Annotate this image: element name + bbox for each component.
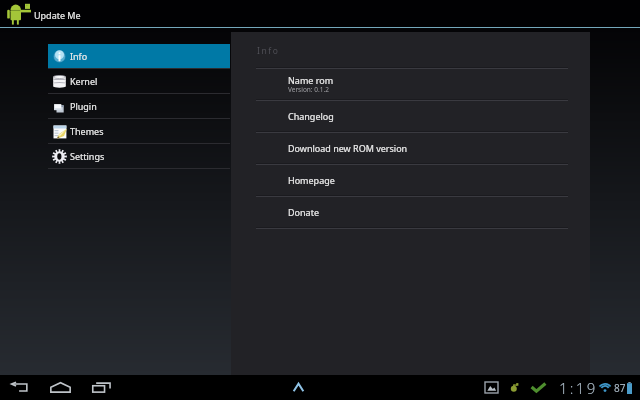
button[interactable]: Recent apps xyxy=(88,375,114,400)
staticText: 1:19 xyxy=(559,378,598,398)
button[interactable]: Donate xyxy=(231,197,590,227)
staticText: Version: 0.1.2 xyxy=(288,85,329,94)
button[interactable]: Name rom xyxy=(231,69,590,99)
button[interactable]: Status icons xyxy=(485,375,632,400)
staticText: Settings xyxy=(70,150,105,162)
button[interactable]: Home xyxy=(47,375,73,400)
staticText: Kernel xyxy=(70,75,98,87)
staticText: Info xyxy=(70,50,88,62)
staticText: Homepage xyxy=(288,174,335,186)
staticText: Name rom xyxy=(288,74,334,86)
button[interactable]: Back xyxy=(7,375,33,400)
button[interactable]: Update Me xyxy=(2,0,80,28)
staticText: Plugin xyxy=(70,100,97,112)
button[interactable]: Themes xyxy=(48,119,230,143)
button[interactable]: Info xyxy=(48,44,230,68)
button[interactable]: Changelog xyxy=(231,101,590,131)
staticText: Info xyxy=(257,45,280,57)
staticText: Update Me xyxy=(34,9,81,21)
button[interactable]: Settings xyxy=(48,144,230,168)
button[interactable]: Plugin xyxy=(48,94,230,118)
staticText: Download new ROM version xyxy=(288,142,408,154)
button[interactable]: Show notifications xyxy=(288,375,308,400)
staticText: 87 xyxy=(614,381,626,395)
button[interactable]: Download new ROM version xyxy=(231,133,590,163)
button[interactable]: Kernel xyxy=(48,69,230,93)
staticText: Themes xyxy=(70,125,104,137)
staticText: Changelog xyxy=(288,110,334,122)
button[interactable]: Homepage xyxy=(231,165,590,195)
staticText: Donate xyxy=(288,206,319,218)
